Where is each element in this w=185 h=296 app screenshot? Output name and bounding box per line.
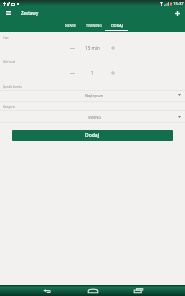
- staticText: 15 min: [85, 45, 100, 51]
- button[interactable]: Home: [86, 285, 100, 296]
- button[interactable]: Add: [171, 7, 183, 19]
- button[interactable]: Open navigation drawer: [2, 7, 14, 19]
- button[interactable]: DODAJ: [105, 21, 128, 32]
- button[interactable]: NOWE: [58, 21, 82, 32]
- staticText: DODAJ: [111, 23, 123, 28]
- button[interactable]: Increase: [107, 67, 119, 79]
- staticText: Zestawy: [21, 10, 39, 16]
- staticText: 1: [91, 70, 94, 76]
- staticText: Kategoria: [3, 105, 15, 109]
- button[interactable]: Back: [40, 285, 54, 296]
- button[interactable]: Recent apps: [131, 285, 145, 296]
- staticText: Dodaj: [85, 132, 100, 139]
- button[interactable]: Dodaj: [12, 130, 173, 141]
- staticText: TRENING: [86, 23, 102, 28]
- button[interactable]: TRENING: [82, 21, 105, 32]
- button[interactable]: Increase: [107, 42, 119, 54]
- staticText: Najlepsze: [85, 93, 104, 98]
- button[interactable]: Decrease: [66, 67, 78, 79]
- staticText: NOWE: [65, 23, 76, 28]
- button[interactable]: Najlepsze: [0, 90, 185, 100]
- staticText: 15:37: [173, 1, 184, 7]
- staticText: Czas: [3, 36, 9, 40]
- staticText: SWING: [88, 115, 102, 120]
- staticText: Sposób liczenia: [3, 85, 22, 89]
- staticText: Ilość rund: [3, 60, 16, 64]
- button[interactable]: SWING: [0, 112, 185, 122]
- button[interactable]: Decrease: [66, 42, 78, 54]
